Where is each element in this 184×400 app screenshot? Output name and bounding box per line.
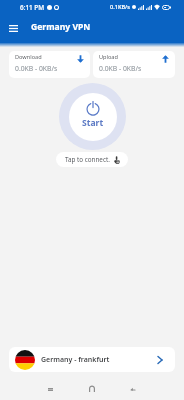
button[interactable]: Start [59,83,126,150]
button[interactable]: Upload [93,51,175,78]
button[interactable]: Recent apps [40,379,60,399]
staticText: Germany - frankfurt [41,355,110,365]
staticText: Start [82,117,104,129]
staticText: 6:11 PM [20,3,45,12]
button[interactable]: Home [82,379,102,399]
button[interactable]: Tap to connect. [56,152,128,167]
staticText: 0.0KB - 0KB/s [99,64,142,73]
staticText: Tap to connect. [65,155,110,164]
staticText: 0.1KB/s [110,3,130,11]
button[interactable]: Germany - frankfurt [9,347,175,372]
button[interactable]: Download [9,51,90,78]
staticText: 0.0KB - 0KB/s [15,64,58,73]
staticText: Upload [99,53,118,61]
staticText: Germany VPN [31,21,91,33]
staticText: Download [15,53,42,61]
button[interactable]: Back [122,379,142,399]
button[interactable]: Menu [0,13,27,40]
